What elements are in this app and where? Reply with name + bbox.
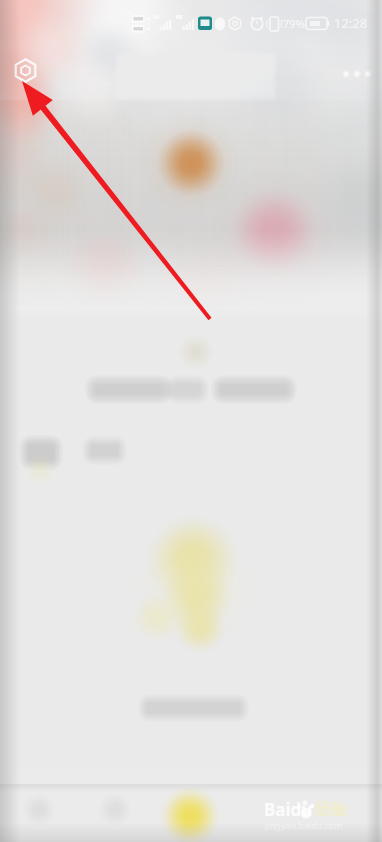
button[interactable]: Discover — [94, 786, 136, 828]
staticText: 经验 — [315, 800, 347, 820]
button[interactable]: Settings — [11, 56, 40, 85]
staticText: 79% — [283, 16, 305, 31]
staticText: 12:28 — [334, 14, 368, 32]
button[interactable]: More options — [341, 58, 373, 90]
button[interactable]: Add — [166, 790, 214, 838]
staticText: Baidu — [264, 798, 313, 821]
button[interactable]: Home — [18, 786, 60, 828]
staticText: jingyan.baidu.com — [265, 819, 343, 831]
